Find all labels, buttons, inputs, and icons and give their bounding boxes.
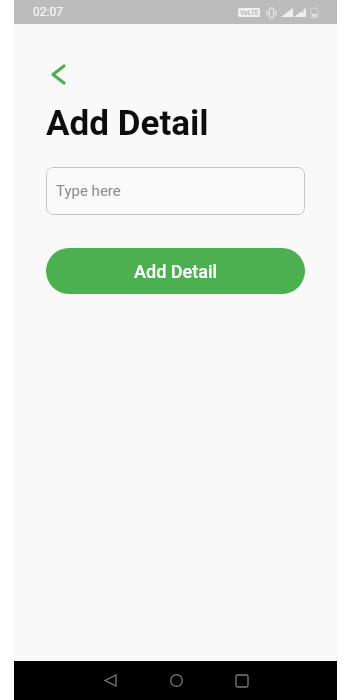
button[interactable]: Recent apps (220, 661, 264, 700)
button[interactable]: Back (88, 661, 132, 700)
staticText: Add Detail (134, 261, 218, 282)
staticText: VoLTE (240, 9, 259, 17)
button[interactable]: Home (154, 661, 198, 700)
staticText: 02:07 (33, 5, 63, 19)
staticText: Add Detail (46, 103, 209, 144)
staticText: Type here (56, 182, 121, 200)
button[interactable]: Back (46, 65, 70, 83)
button[interactable]: Add Detail (46, 248, 305, 294)
button[interactable]: Type here (46, 167, 305, 215)
